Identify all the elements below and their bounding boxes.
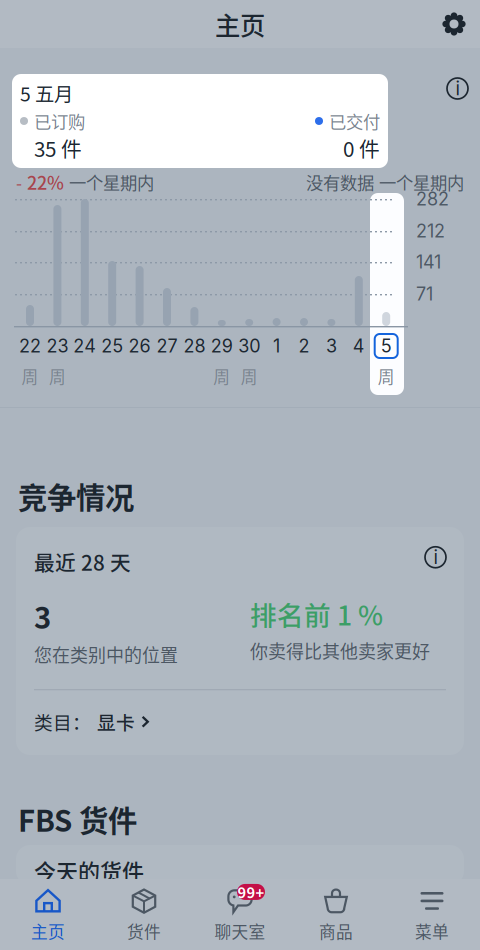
staticText: 类目： (34, 708, 91, 735)
button[interactable]: 信息 (447, 78, 468, 99)
staticText: 24 (73, 335, 96, 357)
staticText: 141 (416, 251, 441, 273)
staticText: 35 件 (34, 133, 82, 163)
staticText: 周 (213, 364, 230, 388)
staticText: 周 (21, 364, 38, 388)
button[interactable]: 菜单 (384, 879, 480, 950)
staticText: 商品 (319, 919, 353, 943)
staticText: 排名前 1 % (250, 595, 383, 633)
staticText: i (433, 546, 437, 568)
staticText: FBS 货件 (18, 798, 137, 840)
staticText: 你卖得比其他卖家更好 (250, 637, 430, 663)
staticText: 已交付 (329, 108, 380, 134)
staticText: 一个星期内 (69, 169, 154, 195)
staticText: 28 (183, 335, 205, 357)
staticText: 竞争情况 (18, 475, 134, 517)
staticText: 周 (49, 364, 66, 388)
staticText: 5 (381, 335, 392, 357)
button[interactable]: 信息 (425, 547, 446, 568)
staticText: 最近 28 天 (34, 547, 131, 577)
button[interactable]: 货件 (96, 879, 192, 950)
staticText: 23 (46, 335, 68, 357)
staticText: 聊天室 (214, 919, 265, 943)
staticText: 212 (416, 220, 445, 242)
staticText: 22 (19, 335, 41, 357)
staticText: 3 (326, 335, 337, 357)
button[interactable]: 类目： (34, 708, 446, 735)
staticText: 货件 (127, 919, 161, 943)
staticText: - (16, 169, 22, 195)
staticText: 22% (27, 169, 64, 195)
button[interactable]: 设置 (442, 12, 480, 36)
staticText: 周 (378, 364, 395, 388)
staticText: 26 (129, 335, 151, 357)
staticText: 主页 (31, 919, 65, 943)
button[interactable]: 99+ (192, 879, 288, 950)
staticText: 1 (273, 335, 280, 357)
staticText: 29 (211, 335, 233, 357)
staticText: 5 五月 (20, 79, 73, 107)
staticText: i (455, 77, 459, 100)
button[interactable]: 主页 (0, 879, 96, 950)
staticText: 菜单 (415, 919, 449, 943)
staticText: 周 (241, 364, 258, 388)
staticText: 已订购 (34, 108, 85, 134)
staticText: 0 件 (343, 133, 380, 163)
staticText: 4 (353, 335, 365, 357)
staticText: 27 (156, 335, 177, 357)
staticText: 显卡 (97, 708, 135, 735)
staticText: 今天的货件 (34, 855, 144, 886)
staticText: 2 (298, 335, 309, 357)
staticText: 3 (34, 595, 51, 637)
staticText: 99+ (237, 881, 264, 902)
staticText: 30 (238, 335, 260, 357)
staticText: 您在类别中的位置 (34, 641, 178, 667)
staticText: 主页 (215, 6, 265, 42)
staticText: 一个星期内 (379, 169, 464, 195)
staticText: 71 (416, 283, 433, 305)
staticText: 没有数据 (306, 169, 374, 195)
button[interactable]: 商品 (288, 879, 384, 950)
staticText: 25 (101, 335, 123, 357)
staticText: 282 (416, 188, 449, 210)
